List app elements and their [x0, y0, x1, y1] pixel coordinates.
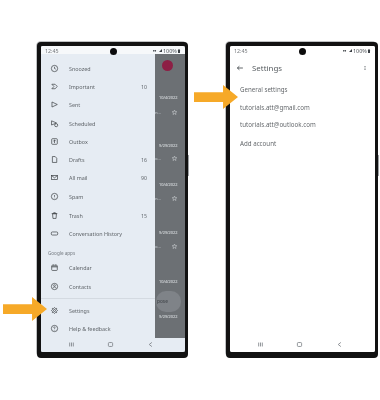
staticText: 12:45 [45, 47, 59, 54]
staticText: Google apps [48, 250, 76, 256]
staticText: n... [155, 196, 161, 202]
staticText: Settings [69, 307, 90, 314]
button[interactable]: Outbox [41, 132, 155, 150]
button[interactable]: Add account [230, 134, 375, 152]
button[interactable]: Home [107, 341, 114, 348]
staticText: Drafts [69, 156, 85, 163]
button[interactable]: All mail [41, 168, 155, 186]
button[interactable]: More options [360, 63, 370, 73]
button[interactable]: Trash [41, 206, 155, 224]
button[interactable]: Spam [41, 187, 155, 205]
staticText: 12:45 [234, 47, 248, 54]
staticText: 9/29/2022 [159, 230, 178, 235]
button[interactable]: Back [336, 341, 343, 348]
staticText: 15 [141, 212, 147, 219]
button[interactable]: Important [41, 77, 155, 95]
staticText: 9/29/2022 [159, 143, 178, 148]
button[interactable]: Help & feedback [41, 319, 155, 337]
button[interactable]: General settings [230, 80, 375, 98]
staticText: Settings [252, 63, 283, 74]
button[interactable]: tutorials.att@gmail.com [230, 98, 375, 116]
button[interactable]: Contacts [41, 277, 155, 295]
button[interactable]: Back [235, 63, 245, 73]
staticText: Sent [69, 101, 81, 108]
staticText: Scheduled [69, 120, 96, 127]
staticText: Outbox [69, 138, 88, 145]
staticText: pose [157, 298, 168, 305]
button[interactable]: pose [156, 291, 181, 312]
staticText: Important [69, 83, 95, 90]
staticText: tutorials.att@outlook.com [240, 120, 316, 128]
staticText: 16 [141, 156, 147, 163]
staticText: 100% [353, 47, 367, 54]
staticText: 10/4/2022 [159, 95, 178, 100]
button[interactable]: Sent [41, 95, 155, 113]
staticText: Trash [69, 212, 83, 219]
staticText: tutorials.att@gmail.com [240, 103, 310, 111]
staticText: 100% [163, 47, 177, 54]
staticText: 9/29/2022 [159, 314, 178, 319]
staticText: Conversation History [69, 230, 123, 237]
staticText: Snoozed [69, 65, 91, 72]
staticText: 90 [141, 174, 147, 181]
button[interactable]: Settings [41, 301, 155, 319]
button[interactable]: Snoozed [41, 59, 155, 77]
staticText: n... [155, 110, 161, 116]
staticText: Help & feedback [69, 325, 111, 332]
button[interactable]: tutorials.att@outlook.com [230, 115, 375, 133]
staticText: 10/4/2022 [159, 182, 178, 187]
staticText: Calendar [69, 264, 92, 271]
staticText: All mail [69, 174, 88, 181]
button[interactable]: Scheduled [41, 114, 155, 132]
button[interactable]: Drafts [41, 150, 155, 168]
staticText: 10/4/2022 [159, 279, 178, 284]
staticText: Spam [69, 193, 84, 200]
staticText: o... [155, 156, 161, 162]
staticText: Contacts [69, 283, 92, 290]
button[interactable]: Recent apps [68, 341, 75, 348]
staticText: General settings [240, 85, 288, 93]
staticText: 10 [141, 83, 147, 90]
button[interactable]: Calendar [41, 258, 155, 276]
staticText: o... [155, 244, 161, 250]
button[interactable]: Home [296, 341, 303, 348]
button[interactable]: Conversation History [41, 224, 155, 242]
button[interactable]: Recent apps [257, 341, 264, 348]
staticText: Add account [240, 139, 277, 147]
button[interactable]: Back [147, 341, 154, 348]
